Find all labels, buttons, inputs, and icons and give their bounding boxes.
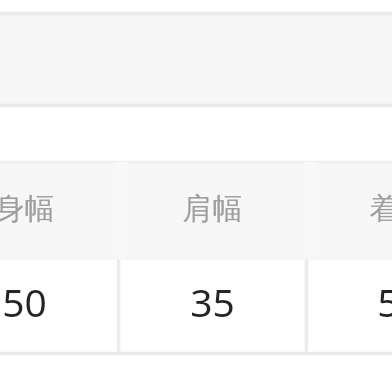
button[interactable]: 身幅 <box>0 162 118 259</box>
button[interactable]: 着丈 <box>306 162 392 259</box>
staticText: 50 <box>0 275 118 328</box>
staticText: 着丈 <box>306 190 392 228</box>
staticText: 肩幅 <box>119 190 306 228</box>
staticText: 50 <box>306 275 392 328</box>
button[interactable]: 35 <box>119 259 306 352</box>
button[interactable]: 50 <box>0 259 118 352</box>
button[interactable]: 肩幅 <box>119 162 306 259</box>
button[interactable]: 50 <box>306 259 392 352</box>
staticText: 35 <box>119 275 306 328</box>
staticText: 身幅 <box>0 190 118 228</box>
